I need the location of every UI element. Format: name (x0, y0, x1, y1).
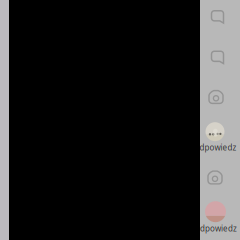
button[interactable]: Odpowiedz (193, 122, 236, 153)
button[interactable]: Take photo (201, 84, 231, 110)
staticText: Odpowiedz (193, 142, 236, 153)
button[interactable]: Comment (202, 44, 232, 70)
button[interactable]: Odpowiedz (194, 201, 237, 234)
staticText: Odpowiedz (194, 223, 237, 234)
button[interactable]: Take photo (200, 164, 230, 190)
button[interactable]: Comment (202, 4, 232, 30)
